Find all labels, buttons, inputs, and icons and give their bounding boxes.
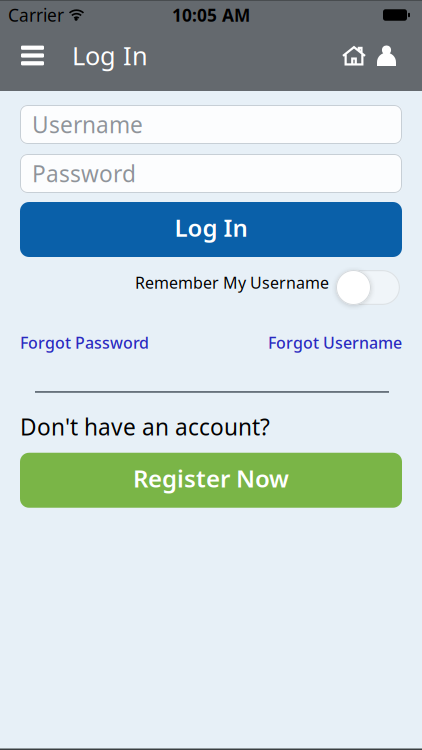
staticText: Log In [174, 212, 247, 243]
staticText: Carrier [8, 3, 64, 26]
button[interactable]: Forgot Password [20, 332, 149, 353]
button[interactable]: Log In [20, 202, 402, 257]
button[interactable]: Menu [0, 46, 52, 65]
staticText: 10:05 AM [172, 3, 250, 26]
staticText: Log In [72, 39, 148, 72]
staticText: Don't have an account? [20, 412, 270, 442]
staticText: Username [32, 109, 143, 139]
staticText: Password [32, 158, 136, 188]
secureTextField[interactable]: Password [32, 158, 402, 188]
button[interactable]: Home [343, 46, 377, 65]
staticText: Forgot Username [268, 332, 402, 353]
staticText: Remember My Username [135, 272, 329, 293]
textField[interactable]: Username [32, 109, 402, 139]
button[interactable]: Forgot Username [268, 332, 402, 353]
button[interactable]: Profile [377, 45, 422, 66]
staticText: Forgot Password [20, 332, 149, 353]
button[interactable]: Register Now [20, 453, 402, 508]
staticText: Register Now [133, 462, 289, 494]
button[interactable]: Remember My Username [336, 270, 400, 305]
